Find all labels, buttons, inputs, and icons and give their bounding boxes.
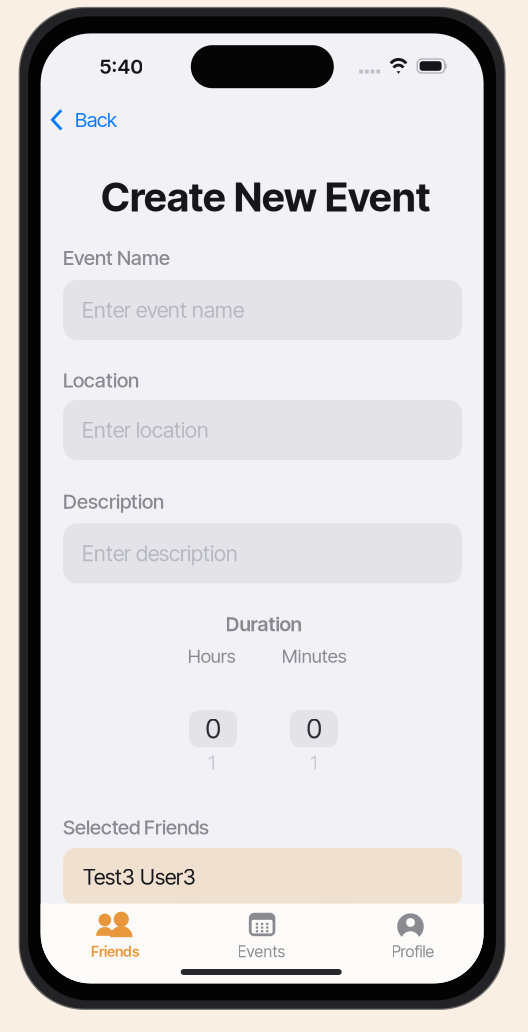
button[interactable]: 0 <box>189 710 237 747</box>
staticText: Description <box>63 489 164 514</box>
button[interactable]: Enter description <box>63 523 462 583</box>
staticText: Test3 User3 <box>83 864 196 890</box>
button[interactable]: Back <box>42 101 126 139</box>
button[interactable]: Events <box>202 904 322 956</box>
button[interactable]: Enter event name <box>63 280 462 340</box>
staticText: 0 <box>206 713 221 745</box>
staticText: Enter location <box>82 417 209 443</box>
staticText: Hours <box>188 645 236 667</box>
button[interactable]: Friends <box>55 904 175 956</box>
button[interactable]: 0 <box>290 710 338 747</box>
staticText: Enter description <box>82 540 238 566</box>
staticText: Back <box>75 108 117 132</box>
staticText: 1 <box>310 750 317 774</box>
staticText: Create New Event <box>101 173 430 221</box>
staticText: Event Name <box>63 245 170 270</box>
staticText: 0 <box>306 713 321 745</box>
button[interactable]: Test3 User3 <box>63 848 462 906</box>
staticText: Friends <box>91 943 139 960</box>
button[interactable]: Profile <box>353 904 473 956</box>
staticText: 5:40 <box>99 54 143 79</box>
staticText: Minutes <box>282 645 347 667</box>
staticText: Enter event name <box>82 297 244 323</box>
staticText: Location <box>63 368 139 392</box>
staticText: 1 <box>208 750 215 774</box>
staticText: Selected Friends <box>63 815 209 839</box>
button[interactable]: Enter location <box>63 400 462 460</box>
staticText: Profile <box>391 942 434 961</box>
staticText: Duration <box>226 612 302 636</box>
staticText: Events <box>238 942 286 961</box>
